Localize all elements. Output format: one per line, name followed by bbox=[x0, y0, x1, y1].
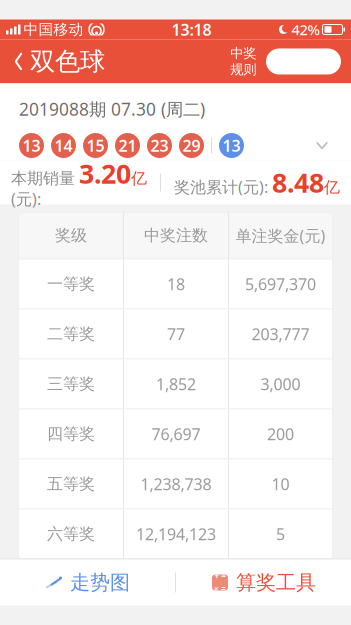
button[interactable]: 中奖 规则 bbox=[226, 45, 260, 78]
staticText: 二等奖 bbox=[47, 324, 95, 344]
staticText: 13 bbox=[22, 135, 40, 156]
staticText: 13:18 bbox=[171, 19, 211, 40]
button[interactable]: 双色球 bbox=[0, 40, 105, 83]
staticText: 10 bbox=[271, 473, 289, 495]
staticText: 1,852 bbox=[156, 373, 196, 395]
button[interactable]: + bbox=[176, 559, 351, 605]
staticText: 13 bbox=[222, 135, 240, 156]
staticText: 中奖注数 bbox=[144, 226, 208, 245]
staticText: 21 bbox=[118, 135, 136, 156]
staticText: 五等奖 bbox=[47, 474, 95, 494]
staticText: 奖级 bbox=[55, 226, 87, 245]
staticText: 12,194,123 bbox=[136, 523, 216, 545]
staticText: = bbox=[221, 583, 226, 594]
staticText: 单注奖金(元) bbox=[235, 225, 325, 246]
staticText: 5 bbox=[276, 523, 285, 545]
staticText: 奖池累计(元): bbox=[174, 176, 268, 197]
staticText: 23 bbox=[150, 135, 168, 156]
staticText: 77 bbox=[167, 323, 185, 345]
button[interactable]: Close bbox=[304, 48, 341, 74]
staticText: 算奖工具 bbox=[236, 570, 316, 595]
staticText: 76,697 bbox=[151, 423, 200, 445]
staticText: 六等奖 bbox=[47, 524, 95, 544]
staticText: 中奖 规则 bbox=[230, 45, 256, 78]
staticText: 18 bbox=[167, 273, 185, 295]
staticText: 三等奖 bbox=[47, 374, 95, 394]
staticText: 3.20 bbox=[79, 156, 131, 191]
staticText: 5,697,370 bbox=[245, 273, 316, 295]
staticText: 29 bbox=[182, 135, 200, 156]
staticText: + bbox=[214, 571, 219, 581]
staticText: 203,777 bbox=[251, 323, 309, 345]
staticText: 15 bbox=[86, 135, 104, 156]
staticText: 3,000 bbox=[260, 373, 300, 395]
staticText: 亿 bbox=[324, 178, 340, 197]
staticText: 200 bbox=[267, 423, 294, 445]
staticText: 中国移动 bbox=[23, 20, 83, 38]
staticText: 本期销量(元): bbox=[11, 168, 75, 209]
staticText: 2019088期 07.30 (周二) bbox=[19, 97, 205, 120]
staticText: 42% bbox=[291, 20, 319, 39]
staticText: 四等奖 bbox=[47, 424, 95, 444]
button[interactable]: 走势图 bbox=[0, 559, 175, 605]
staticText: 1,238,738 bbox=[140, 473, 211, 495]
button[interactable]: Collapse bbox=[305, 130, 339, 160]
staticText: 双色球 bbox=[30, 46, 105, 77]
staticText: 亿 bbox=[131, 168, 147, 188]
staticText: 14 bbox=[54, 135, 72, 156]
staticText: 一等奖 bbox=[47, 274, 95, 294]
staticText: 走势图 bbox=[70, 570, 130, 595]
button[interactable]: More bbox=[266, 48, 303, 74]
staticText: 8.48 bbox=[272, 165, 324, 200]
staticText: × bbox=[214, 583, 219, 594]
